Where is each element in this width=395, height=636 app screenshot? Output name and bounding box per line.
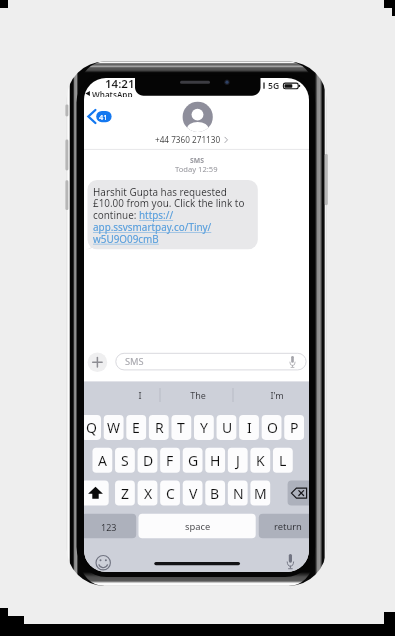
button[interactable]	[88, 180, 258, 249]
button[interactable]: S	[115, 448, 135, 473]
staticText: Today 12:59	[175, 164, 218, 174]
button[interactable]: T	[171, 415, 191, 440]
staticText: K	[256, 451, 265, 470]
button[interactable]: Q	[84, 415, 101, 440]
button[interactable]: E	[126, 415, 146, 440]
staticText: R	[155, 418, 164, 437]
staticText: Y	[200, 418, 208, 437]
button[interactable]: Z	[115, 481, 135, 506]
button[interactable]: W	[104, 415, 124, 440]
button[interactable]: Back to 41 conversations	[88, 109, 114, 125]
staticText: H	[210, 451, 221, 470]
button[interactable]: L	[273, 448, 293, 473]
staticText: I	[247, 418, 252, 437]
button[interactable]: X	[138, 481, 158, 506]
button[interactable]: C	[160, 481, 180, 506]
staticText: return	[274, 520, 302, 533]
button[interactable]: K	[250, 448, 270, 473]
staticText: T	[177, 418, 185, 437]
staticText: W	[107, 418, 121, 437]
button[interactable]: I	[239, 415, 259, 440]
staticText: Z	[121, 484, 130, 503]
button[interactable]: Shift	[84, 481, 109, 506]
staticText: space	[185, 520, 211, 533]
staticText: +44 7360 271130	[155, 134, 221, 145]
button[interactable]: J	[228, 448, 248, 473]
staticText: 14:21	[105, 78, 135, 90]
staticText: N	[233, 484, 244, 503]
staticText: I	[138, 389, 142, 401]
staticText: O	[267, 418, 278, 437]
button[interactable]: +44 7360 271130	[151, 134, 225, 145]
button[interactable]: H	[205, 448, 225, 473]
button[interactable]: V	[183, 481, 203, 506]
staticText: J	[236, 451, 240, 470]
button[interactable]: Emoji	[94, 554, 112, 572]
button[interactable]: N	[228, 481, 248, 506]
button[interactable]: Y	[194, 415, 214, 440]
staticText: D	[143, 451, 154, 470]
button[interactable]: I'm	[253, 381, 301, 409]
button[interactable]: The	[174, 381, 222, 409]
staticText: WhatsApp	[92, 89, 133, 97]
staticText: B	[210, 484, 220, 503]
staticText: F	[166, 451, 174, 470]
button[interactable]: WhatsApp	[85, 89, 133, 97]
button[interactable]: 123	[84, 514, 136, 539]
button[interactable]: A	[92, 448, 112, 473]
button[interactable]: M	[250, 481, 270, 506]
button[interactable]: U	[217, 415, 237, 440]
staticText: 123	[101, 521, 117, 533]
staticText: 41	[99, 112, 108, 122]
button[interactable]: space	[139, 514, 256, 539]
button[interactable]: P	[284, 415, 304, 440]
button[interactable]: I	[116, 381, 164, 409]
staticText: Harshit Gupta has requested £10.00 from …	[93, 185, 252, 246]
staticText: A	[98, 451, 107, 470]
button[interactable]: B	[205, 481, 225, 506]
button[interactable]: D	[138, 448, 158, 473]
button[interactable]: F	[160, 448, 180, 473]
staticText: V	[189, 484, 198, 503]
staticText: P	[290, 418, 299, 437]
button[interactable]: return	[259, 514, 309, 539]
button[interactable]: Add attachment	[88, 352, 108, 372]
button[interactable]: SMS	[116, 353, 306, 370]
staticText: C	[166, 484, 175, 503]
staticText: I'm	[270, 389, 284, 401]
button[interactable]: Backspace	[288, 481, 309, 506]
staticText: L	[279, 451, 287, 470]
staticText: 5G	[268, 80, 280, 91]
staticText: SMS	[125, 355, 144, 368]
staticText: M	[254, 484, 267, 503]
button[interactable]: G	[183, 448, 203, 473]
staticText: E	[132, 418, 140, 437]
staticText: X	[144, 484, 153, 503]
button[interactable]: R	[149, 415, 169, 440]
staticText: SMS	[190, 156, 204, 165]
staticText: Q	[86, 418, 97, 437]
staticText: The	[190, 389, 206, 401]
button[interactable]: O	[262, 415, 282, 440]
staticText: G	[188, 451, 199, 470]
staticText: S	[121, 451, 129, 470]
staticText: U	[222, 418, 233, 437]
button[interactable]: Dictation	[282, 553, 298, 572]
